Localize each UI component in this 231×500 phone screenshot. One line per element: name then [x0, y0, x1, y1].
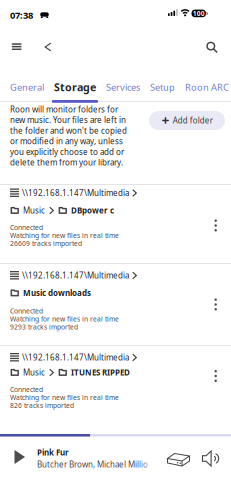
staticText: Music downloads [23, 288, 91, 298]
staticText: or modified in any way, unless [10, 136, 123, 146]
button[interactable]: Music [10, 367, 130, 378]
staticText: 07:38 [10, 9, 33, 21]
staticText: ITUNES RIPPED [71, 367, 130, 378]
button[interactable]: General [10, 81, 44, 93]
button[interactable]: More options [208, 215, 223, 235]
staticText: you explicitly choose to add or [10, 146, 124, 157]
button[interactable]: Back [40, 38, 55, 55]
staticText: Roon will monitor folders for [10, 104, 118, 115]
button[interactable]: More options [208, 294, 223, 314]
staticText: Watching for new files in real time [10, 314, 119, 323]
button[interactable]: More options [208, 366, 223, 386]
button[interactable]: Music [10, 205, 114, 216]
staticText: Storage [54, 80, 96, 94]
button[interactable]: \\192.168.1.147\Multimedia [10, 352, 137, 362]
staticText: the folder and won't be copied [10, 125, 127, 136]
staticText: new music. Your files are left in [10, 115, 126, 125]
staticText: DBpower c [71, 205, 114, 216]
button[interactable]: Services [106, 81, 140, 93]
button[interactable]: Play [9, 445, 30, 469]
staticText: Music [23, 367, 45, 378]
button[interactable]: \\192.168.1.147\Multimedia [10, 270, 137, 280]
button[interactable]: Add folder [149, 111, 225, 130]
staticText: \\192.168.1.147\Multimedia [22, 352, 129, 363]
staticText: Music [23, 205, 45, 216]
staticText: Connected [10, 306, 43, 315]
staticText: 9293 tracks imported [10, 322, 78, 331]
staticText: Setup [150, 81, 175, 93]
staticText: \\192.168.1.147\Multimedia [22, 270, 129, 281]
button[interactable]: \\192.168.1.147\Multimedia [10, 188, 137, 198]
staticText: \\192.168.1.147\Multimedia [22, 188, 129, 198]
staticText: delete them from your library. [10, 157, 123, 168]
staticText: Watching for new files in real time [10, 393, 119, 402]
staticText: 26609 tracks imported [10, 239, 82, 248]
staticText: 100 [193, 9, 205, 18]
staticText: Add folder [173, 115, 213, 126]
button[interactable]: Setup [150, 81, 175, 93]
staticText: Watching for new files in real time [10, 231, 119, 240]
button[interactable]: Pink Fur [37, 447, 148, 470]
staticText: Connected [10, 385, 43, 394]
staticText: Connected [10, 223, 43, 232]
button[interactable]: Menu [6, 36, 27, 57]
button[interactable]: Audio zone [162, 448, 194, 471]
staticText: Services [106, 81, 140, 93]
button[interactable]: Music downloads [10, 287, 91, 298]
staticText: General [10, 81, 44, 93]
staticText: 826 tracks imported [10, 401, 74, 410]
staticText: Butcher Brown, Michael Millio [37, 459, 148, 470]
staticText: Roon ARC [185, 81, 229, 93]
button[interactable]: Roon ARC [185, 81, 229, 93]
button[interactable]: Storage [54, 80, 96, 94]
button[interactable]: Volume [198, 446, 223, 470]
button[interactable]: Search [201, 36, 223, 58]
staticText: Pink Fur [37, 447, 69, 458]
